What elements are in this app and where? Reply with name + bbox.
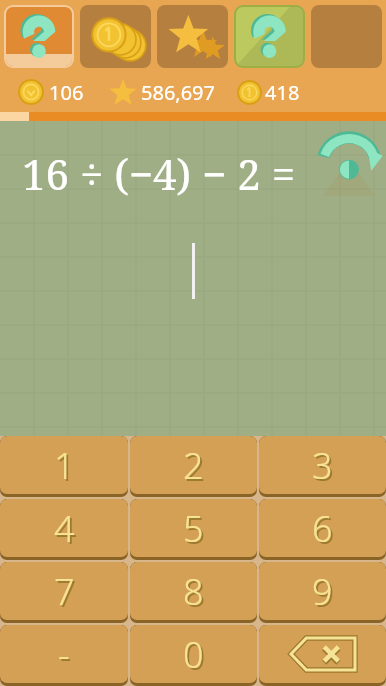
button[interactable]: 7 xyxy=(0,562,128,620)
staticText: 106 xyxy=(49,79,84,106)
button[interactable]: 4 xyxy=(0,499,128,557)
staticText: 5 xyxy=(185,506,206,555)
staticText: 2 xyxy=(185,443,206,492)
staticText: 418 xyxy=(265,79,300,106)
button[interactable]: Show answer xyxy=(318,133,380,195)
staticText: - xyxy=(60,632,72,681)
staticText: 586,697 xyxy=(141,79,215,106)
staticText: - xyxy=(58,630,70,679)
staticText: 4 xyxy=(54,504,75,553)
button[interactable]: 8 xyxy=(130,562,257,620)
button[interactable]: 2 xyxy=(130,436,257,494)
button[interactable]: 3 xyxy=(259,436,386,494)
staticText: 7 xyxy=(56,569,77,618)
staticText: 0 xyxy=(185,632,206,681)
staticText: 16 ÷ (−4) − 2 = xyxy=(22,145,296,202)
button[interactable]: Backspace xyxy=(259,625,386,683)
button[interactable]: Coins xyxy=(80,5,151,68)
staticText: 7 xyxy=(54,567,75,616)
staticText: 0 xyxy=(183,630,204,679)
staticText: 4 xyxy=(56,506,77,555)
button[interactable]: 6 xyxy=(259,499,386,557)
button[interactable]: Locked xyxy=(311,5,382,68)
staticText: 8 xyxy=(185,569,206,618)
button[interactable]: 5 xyxy=(130,499,257,557)
button[interactable]: Next quiz xyxy=(236,7,303,66)
staticText: 8 xyxy=(183,567,204,616)
button[interactable]: Stars xyxy=(157,5,228,68)
staticText: 3 xyxy=(314,443,335,492)
staticText: 6 xyxy=(312,504,333,553)
button[interactable]: 0 xyxy=(130,625,257,683)
button[interactable]: - xyxy=(0,625,128,683)
staticText: 5 xyxy=(183,504,204,553)
staticText: 2 xyxy=(183,441,204,490)
button[interactable]: 1 xyxy=(0,436,128,494)
staticText: 6 xyxy=(314,506,335,555)
staticText: 9 xyxy=(312,567,333,616)
staticText: 1 xyxy=(56,443,77,492)
staticText: 9 xyxy=(314,569,335,618)
button[interactable]: 9 xyxy=(259,562,386,620)
staticText: 3 xyxy=(312,441,333,490)
staticText: 1 xyxy=(54,441,75,490)
button[interactable]: Current quiz xyxy=(6,7,72,66)
